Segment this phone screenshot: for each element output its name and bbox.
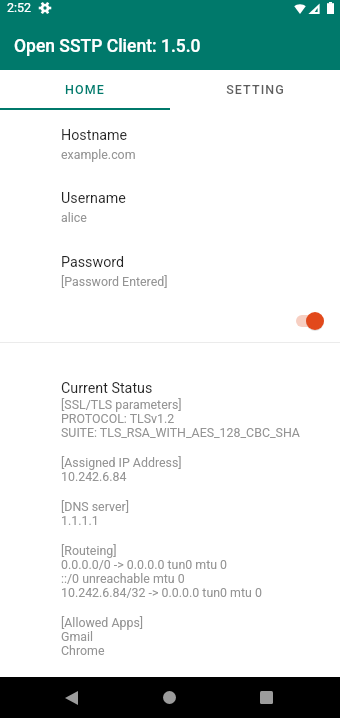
staticText: ::/0 unreachable mtu 0 (61, 572, 185, 586)
staticText: SUITE: TLS_RSA_WITH_AES_128_CBC_SHA (61, 426, 300, 440)
staticText: SETTING (226, 82, 285, 97)
button[interactable]: Recent apps (242, 677, 290, 718)
staticText: example.com (61, 147, 136, 162)
staticText: HOME (65, 82, 105, 97)
staticText: 10.242.6.84/32 -> 0.0.0.0 tun0 mtu 0 (61, 586, 262, 600)
staticText: [Allowed Apps] (61, 616, 144, 630)
staticText: Current Status (61, 380, 153, 397)
staticText: Hostname (61, 127, 128, 144)
staticText: [Password Entered] (61, 274, 168, 289)
button[interactable]: Home (145, 677, 193, 718)
staticText: Open SSTP Client: 1.5.0 (14, 36, 201, 57)
staticText: PROTOCOL: TLSv1.2 (61, 412, 175, 426)
staticText: [SSL/TLS parameters] (61, 398, 182, 412)
button[interactable]: HOME (0, 70, 170, 110)
button[interactable]: SETTING (170, 70, 340, 110)
staticText: Username (61, 190, 126, 207)
staticText: 2:52 (7, 0, 32, 15)
staticText: [Routeing] (61, 544, 117, 558)
staticText: 0.0.0.0/0 -> 0.0.0.0 tun0 mtu 0 (61, 558, 228, 572)
staticText: Gmail (61, 630, 94, 644)
staticText: 10.242.6.84 (61, 470, 127, 484)
staticText: Chrome (61, 644, 105, 658)
staticText: 1.1.1.1 (61, 514, 99, 528)
staticText: [Assigned IP Address] (61, 456, 182, 470)
button[interactable]: Back (47, 677, 95, 718)
staticText: alice (61, 210, 87, 225)
button[interactable]: VPN connection toggle (295, 303, 331, 339)
staticText: [DNS server] (61, 500, 129, 514)
staticText: Password (61, 254, 125, 271)
